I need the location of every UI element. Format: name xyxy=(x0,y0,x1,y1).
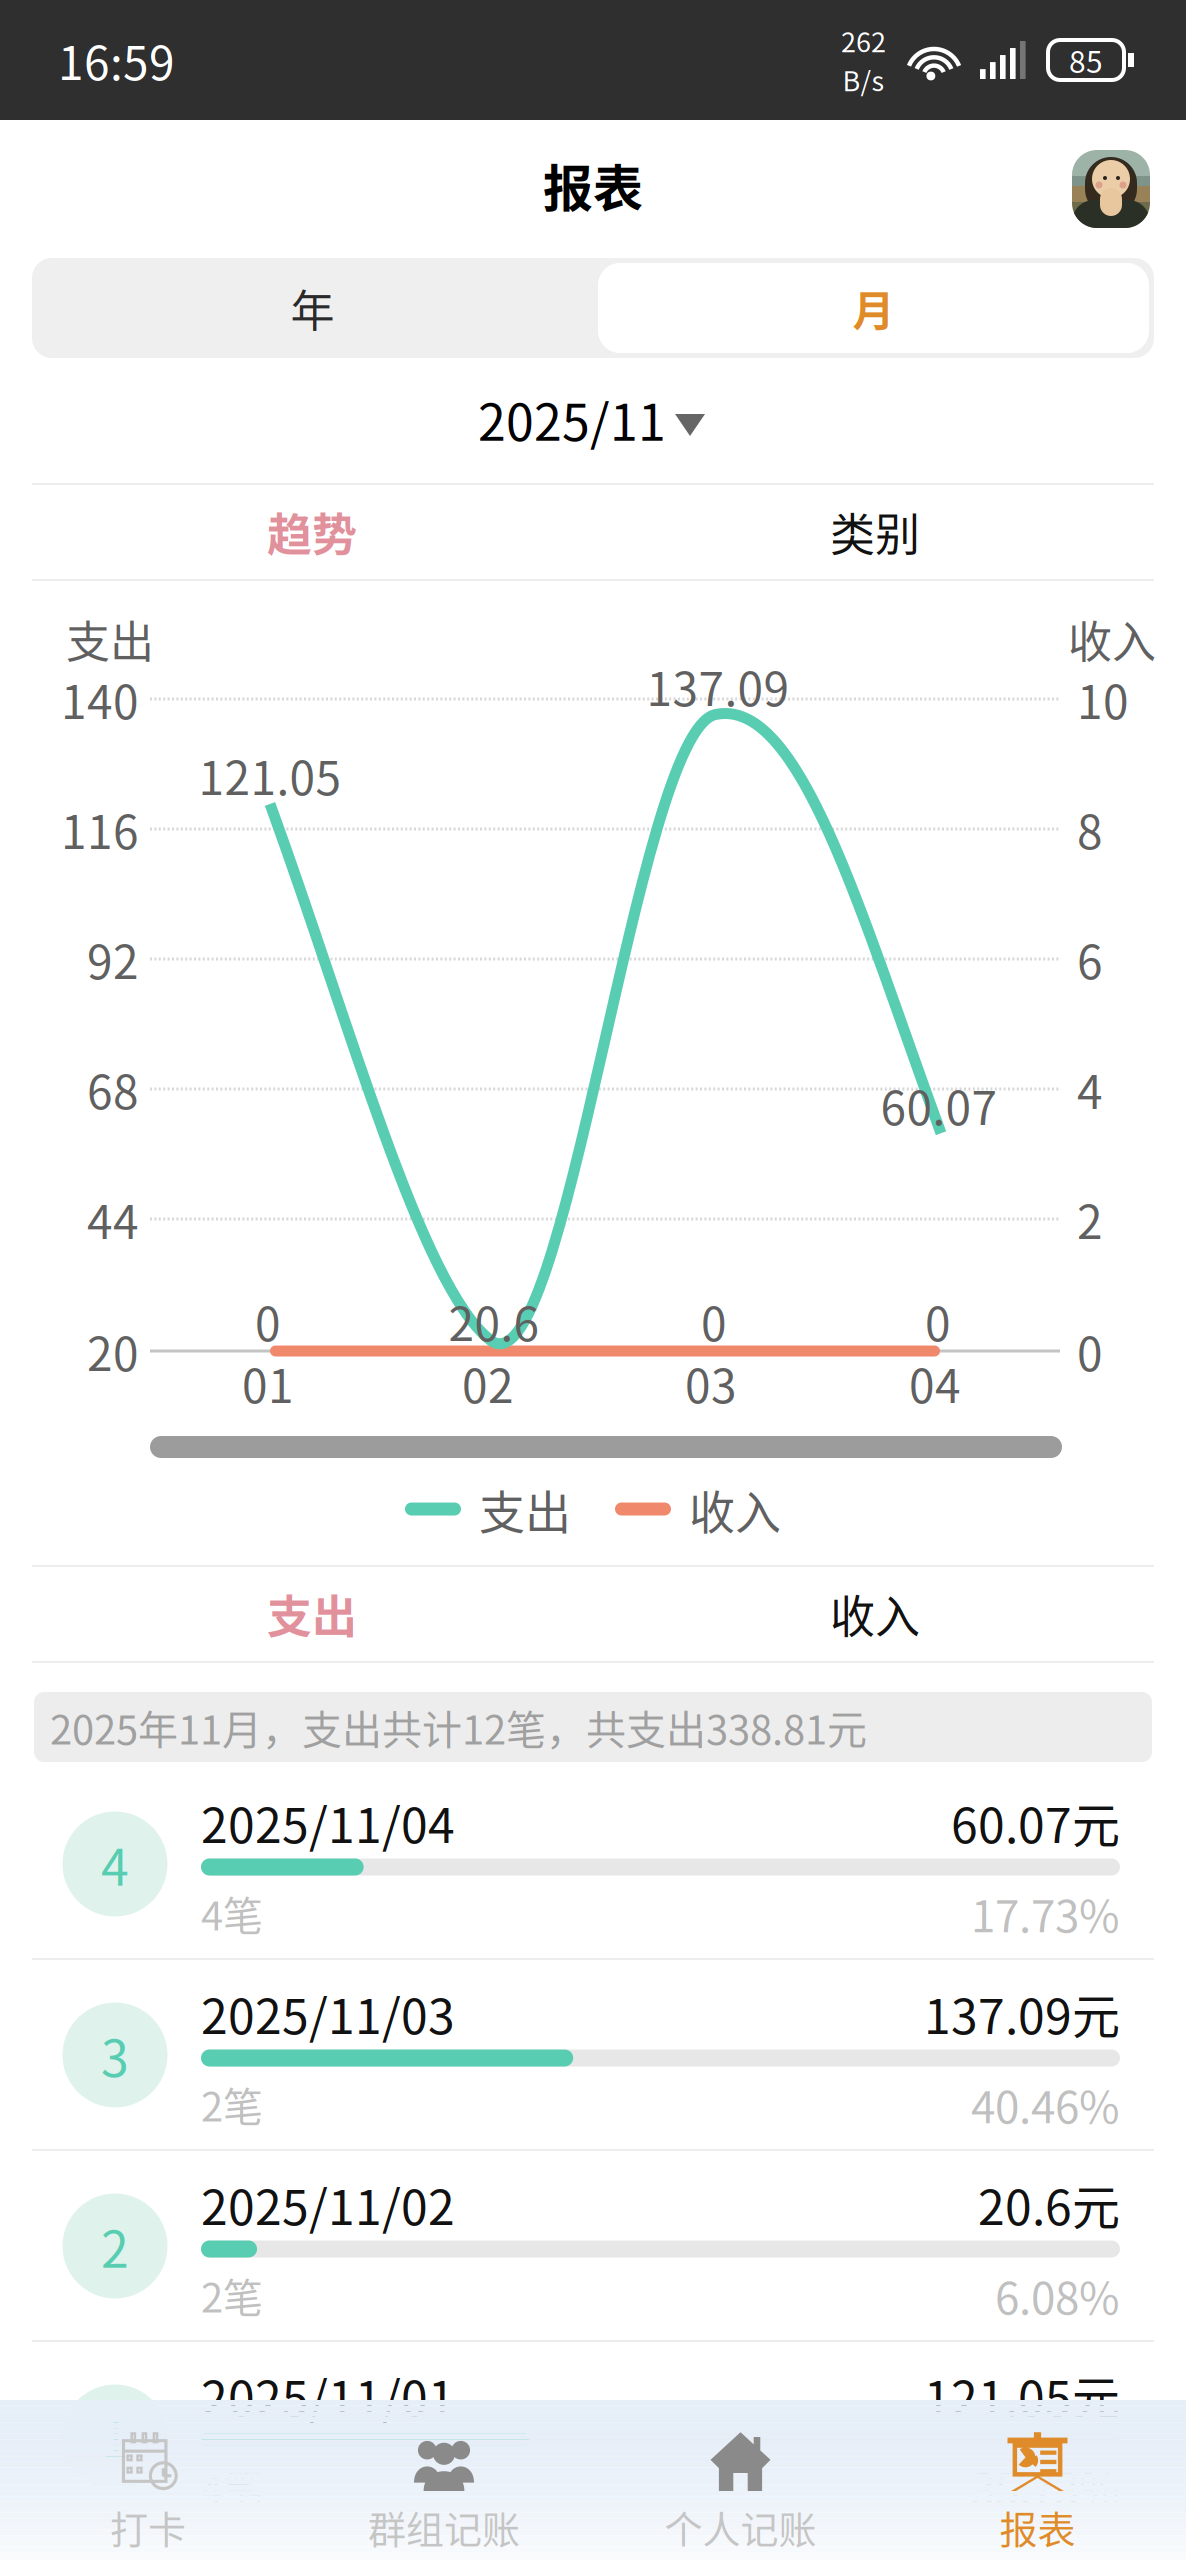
staticText: 支出 xyxy=(479,1476,571,1542)
staticText: 支出 xyxy=(267,1581,357,1647)
button[interactable]: 个人记账 xyxy=(592,2409,889,2560)
staticText: 6.08% xyxy=(995,2263,1120,2327)
staticText: 月 xyxy=(852,278,894,338)
staticText: 3 xyxy=(101,2019,129,2091)
staticText: 2025/11/01 xyxy=(201,2360,455,2430)
button[interactable]: 趋势 xyxy=(0,485,624,579)
staticText: 85 xyxy=(1069,38,1103,82)
button[interactable]: 年 xyxy=(32,258,593,358)
staticText: 1 xyxy=(101,2401,129,2473)
staticText: 116 xyxy=(61,796,139,862)
staticText: 8 xyxy=(1077,796,1103,862)
button[interactable]: 报表 xyxy=(889,2409,1186,2560)
button[interactable]: 支出 xyxy=(0,1567,624,1661)
staticText: 4 xyxy=(101,1828,129,1900)
staticText: 收入 xyxy=(689,1476,781,1542)
staticText: 4 xyxy=(1077,1056,1103,1122)
staticText: 262 xyxy=(841,21,886,60)
staticText: 20 xyxy=(87,1318,139,1384)
staticText: 2笔 xyxy=(201,2266,263,2324)
staticText: 35.73% xyxy=(971,2454,1120,2518)
staticText: 0 xyxy=(701,1288,727,1354)
staticText: 121.05 xyxy=(198,742,341,808)
staticText: 10 xyxy=(1077,666,1129,732)
staticText: 2025/11/03 xyxy=(201,1978,455,2048)
button[interactable]: 1 xyxy=(0,2342,1186,2531)
button[interactable]: 月 xyxy=(593,258,1154,358)
staticText: 68 xyxy=(87,1056,139,1122)
button[interactable]: 群组记账 xyxy=(296,2409,592,2560)
staticText: 60.07元 xyxy=(951,1787,1120,1857)
button[interactable]: 个人中心 xyxy=(1072,150,1150,228)
staticText: 6 xyxy=(1077,926,1103,992)
staticText: 2025/11 xyxy=(478,383,666,455)
staticText: 02 xyxy=(462,1350,514,1416)
button[interactable]: 3 xyxy=(0,1960,1186,2149)
button[interactable]: 2 xyxy=(0,2151,1186,2340)
staticText: 0 xyxy=(255,1288,281,1354)
staticText: B/s xyxy=(842,60,884,99)
staticText: 4笔 xyxy=(201,1884,263,1942)
staticText: 类别 xyxy=(830,499,920,565)
staticText: 支出 xyxy=(66,607,154,671)
button[interactable]: 打卡 xyxy=(0,2409,296,2560)
button[interactable]: 类别 xyxy=(624,485,1186,579)
staticText: 2025/11/04 xyxy=(201,1787,455,1857)
staticText: 2 xyxy=(1077,1186,1103,1252)
staticText: 17.73% xyxy=(971,1881,1120,1945)
staticText: 报表 xyxy=(999,2499,1075,2554)
staticText: 报表 xyxy=(543,149,643,221)
button[interactable]: 4 xyxy=(0,1769,1186,1958)
staticText: 121.05元 xyxy=(924,2360,1120,2430)
staticText: 16:59 xyxy=(58,27,175,93)
staticText: 收入 xyxy=(830,1581,920,1647)
staticText: 140 xyxy=(61,666,139,732)
staticText: 2025年11月，支出共计12笔，共支出338.81元 xyxy=(50,1698,867,1756)
staticText: 20.6元 xyxy=(978,2169,1120,2239)
staticText: 个人记账 xyxy=(664,2499,816,2554)
staticText: 趋势 xyxy=(267,499,357,565)
staticText: 0 xyxy=(925,1288,951,1354)
staticText: 2笔 xyxy=(201,2075,263,2133)
staticText: 20.6 xyxy=(448,1288,539,1354)
staticText: 40.46% xyxy=(971,2072,1120,2136)
staticText: 04 xyxy=(909,1350,961,1416)
staticText: 打卡 xyxy=(110,2499,186,2554)
staticText: 03 xyxy=(685,1350,737,1416)
staticText: 2025/11/02 xyxy=(201,2169,455,2239)
button[interactable]: 2025/11 xyxy=(0,358,1186,483)
staticText: 44 xyxy=(87,1186,139,1252)
staticText: 年 xyxy=(290,276,334,340)
staticText: 收入 xyxy=(1068,607,1156,671)
staticText: 01 xyxy=(242,1350,294,1416)
button[interactable]: 收入 xyxy=(624,1567,1186,1661)
staticText: 137.09 xyxy=(646,653,789,719)
staticText: 2 xyxy=(101,2210,129,2282)
staticText: 137.09元 xyxy=(924,1978,1120,2048)
staticText: 群组记账 xyxy=(368,2499,520,2554)
staticText: 92 xyxy=(87,926,139,992)
staticText: 0 xyxy=(1077,1318,1103,1384)
staticText: 60.07 xyxy=(880,1072,997,1138)
